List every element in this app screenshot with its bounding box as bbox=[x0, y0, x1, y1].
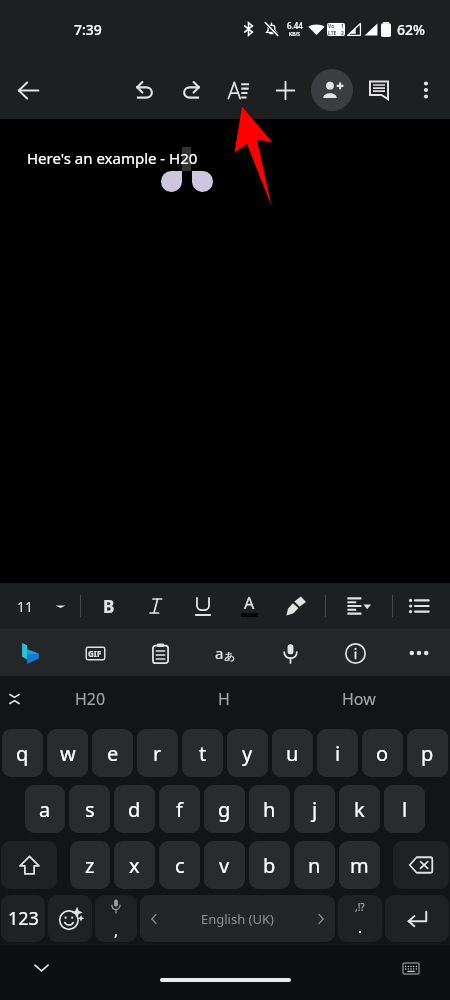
staticText: o bbox=[376, 740, 389, 767]
button[interactable]: a bbox=[25, 785, 65, 833]
staticText: GIF bbox=[88, 648, 102, 659]
button[interactable]: Redo bbox=[170, 69, 212, 111]
staticText: s bbox=[85, 796, 95, 823]
button[interactable]: r bbox=[137, 729, 178, 777]
staticText: あ bbox=[224, 649, 236, 663]
staticText: e bbox=[107, 740, 119, 767]
button[interactable]: Emoji bbox=[48, 895, 92, 942]
staticText: x bbox=[129, 852, 140, 879]
button[interactable]: n bbox=[294, 841, 335, 889]
staticText: b bbox=[263, 852, 276, 879]
button[interactable]: 123 bbox=[1, 895, 45, 942]
button[interactable]: More options bbox=[405, 69, 447, 111]
button[interactable]: English (UK) bbox=[140, 895, 335, 942]
button[interactable]: Expand suggestions bbox=[1, 686, 27, 712]
button[interactable]: j bbox=[294, 785, 335, 833]
staticText: y bbox=[242, 740, 253, 767]
staticText: q bbox=[16, 740, 29, 767]
button[interactable]: Underline bbox=[184, 587, 222, 625]
staticText: g bbox=[218, 796, 231, 823]
button[interactable]: s bbox=[69, 785, 110, 833]
button[interactable]: Comments bbox=[358, 69, 400, 111]
staticText: n bbox=[308, 852, 321, 879]
button[interactable]: u bbox=[272, 729, 313, 777]
button[interactable]: Translate bbox=[204, 632, 246, 674]
staticText: 62% bbox=[397, 20, 425, 39]
button[interactable]: Voice input bbox=[95, 895, 137, 942]
button[interactable]: Highlight bbox=[277, 587, 315, 625]
staticText: , bbox=[114, 920, 119, 940]
staticText: a bbox=[39, 796, 51, 823]
button[interactable]: How bbox=[301, 676, 417, 722]
staticText: c bbox=[175, 852, 185, 879]
staticText: z bbox=[85, 852, 95, 879]
button[interactable]: Bulleted list bbox=[400, 587, 438, 625]
button[interactable]: Text colour bbox=[230, 587, 268, 625]
button[interactable]: y bbox=[227, 729, 268, 777]
button[interactable]: Voice input bbox=[269, 632, 311, 674]
button[interactable]: Text formatting bbox=[217, 69, 259, 111]
staticText: KB/S bbox=[289, 31, 301, 38]
button[interactable]: p bbox=[407, 729, 448, 777]
staticText: 2 bbox=[341, 30, 344, 36]
staticText: k bbox=[354, 796, 365, 823]
button[interactable]: Selection start handle bbox=[161, 171, 182, 192]
button[interactable]: Undo bbox=[123, 69, 165, 111]
staticText: l bbox=[402, 796, 408, 823]
button[interactable]: GIF bbox=[74, 632, 116, 674]
button[interactable]: b bbox=[249, 841, 290, 889]
button[interactable]: Enter bbox=[385, 895, 449, 942]
button[interactable]: Align bbox=[338, 587, 376, 625]
button[interactable]: Info bbox=[334, 632, 376, 674]
button[interactable]: Back bbox=[7, 69, 49, 111]
button[interactable]: z bbox=[70, 841, 110, 889]
button[interactable]: Shift bbox=[1, 841, 57, 889]
staticText: a bbox=[215, 643, 224, 663]
button[interactable]: f bbox=[159, 785, 200, 833]
button[interactable]: w bbox=[47, 729, 88, 777]
button[interactable]: m bbox=[339, 841, 380, 889]
button[interactable]: t bbox=[182, 729, 223, 777]
button[interactable]: q bbox=[2, 729, 43, 777]
button[interactable]: Change keyboard bbox=[396, 953, 426, 983]
button[interactable]: Here's an example - H20 bbox=[0, 119, 450, 583]
staticText: 1 bbox=[341, 23, 344, 30]
button[interactable]: More bbox=[398, 632, 440, 674]
button[interactable]: i bbox=[317, 729, 358, 777]
button[interactable]: Insert bbox=[264, 69, 306, 111]
staticText: ,!? bbox=[355, 900, 365, 914]
button[interactable]: 11 bbox=[10, 590, 73, 623]
button[interactable]: Punctuation bbox=[338, 895, 382, 942]
button[interactable]: l bbox=[384, 785, 425, 833]
staticText: m bbox=[350, 852, 369, 879]
button[interactable]: c bbox=[159, 841, 200, 889]
staticText: H20 bbox=[75, 688, 106, 710]
button[interactable]: Bold bbox=[90, 587, 128, 625]
staticText: . bbox=[358, 917, 363, 937]
staticText: i bbox=[335, 740, 341, 767]
button[interactable]: g bbox=[204, 785, 245, 833]
button[interactable]: Hide keyboard bbox=[24, 951, 58, 985]
button[interactable]: Backspace bbox=[393, 841, 449, 889]
staticText: Here's an example - H20 bbox=[27, 148, 198, 168]
button[interactable]: Italic bbox=[137, 587, 175, 625]
button[interactable]: H bbox=[166, 676, 282, 722]
button[interactable]: e bbox=[92, 729, 133, 777]
staticText: r bbox=[153, 740, 162, 767]
button[interactable]: k bbox=[339, 785, 380, 833]
staticText: LTE bbox=[328, 30, 337, 36]
button[interactable]: H20 bbox=[32, 676, 148, 722]
staticText: d bbox=[128, 796, 141, 823]
button[interactable]: v bbox=[204, 841, 245, 889]
button[interactable]: h bbox=[249, 785, 290, 833]
button[interactable]: d bbox=[114, 785, 155, 833]
button[interactable]: Share bbox=[311, 69, 353, 111]
staticText: A bbox=[244, 592, 255, 614]
staticText: u bbox=[286, 740, 299, 767]
button[interactable]: x bbox=[114, 841, 155, 889]
button[interactable]: Selection end handle bbox=[192, 171, 213, 192]
button[interactable]: Search bbox=[9, 632, 51, 674]
button[interactable]: o bbox=[362, 729, 403, 777]
staticText: Vo bbox=[328, 23, 335, 30]
button[interactable]: Clipboard bbox=[139, 632, 181, 674]
